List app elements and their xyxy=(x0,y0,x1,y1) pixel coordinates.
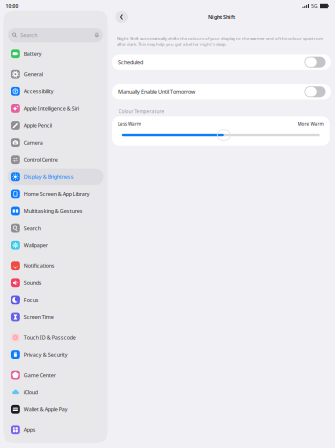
staticText: Wallet & Apple Pay xyxy=(24,406,68,413)
staticText: Colour Temperature xyxy=(118,108,164,115)
button[interactable]: Battery xyxy=(7,46,103,62)
staticText: Search xyxy=(24,224,41,232)
staticText: Screen Time xyxy=(24,313,54,321)
button[interactable]: Camera xyxy=(7,134,103,151)
staticText: More Warm xyxy=(298,121,324,127)
staticText: 10:00 xyxy=(5,3,18,9)
staticText: Accessibility xyxy=(24,88,54,95)
staticText: Camera xyxy=(24,139,43,146)
button[interactable]: Touch ID & Passcode xyxy=(7,329,103,346)
staticText: Game Center xyxy=(24,371,56,379)
button[interactable]: Multitasking & Gestures xyxy=(7,203,103,219)
staticText: Scheduled xyxy=(118,58,143,66)
button[interactable]: Notifications xyxy=(7,258,103,274)
button[interactable]: Accessibility xyxy=(7,83,103,99)
staticText: Wallpaper xyxy=(24,242,48,249)
button[interactable]: Search xyxy=(7,220,103,236)
staticText: Night Shift automatically shifts the col… xyxy=(117,35,323,47)
staticText: Focus xyxy=(24,296,39,304)
button[interactable]: General xyxy=(7,66,103,82)
button[interactable]: Focus xyxy=(7,292,103,308)
staticText: Apple Intelligence & Siri xyxy=(24,105,79,112)
button[interactable]: Screen Time xyxy=(7,309,103,325)
staticText: Battery xyxy=(24,50,42,57)
staticText: General xyxy=(24,71,43,78)
button[interactable]: Back xyxy=(115,11,128,23)
button[interactable]: Home Screen & App Library xyxy=(7,186,103,202)
staticText: Less Warm xyxy=(118,121,141,127)
staticText: 5G xyxy=(311,3,318,9)
staticText: Night Shift xyxy=(208,13,235,21)
button[interactable]: iCloud xyxy=(7,384,103,400)
button[interactable]: Scheduled xyxy=(112,54,331,70)
button[interactable]: Apple Intelligence & Siri xyxy=(7,100,103,116)
staticText: Control Centre xyxy=(24,156,58,163)
staticText: Touch ID & Passcode xyxy=(24,334,76,341)
staticText: Sounds xyxy=(24,279,42,286)
staticText: Search xyxy=(20,31,37,39)
button[interactable]: Game Center xyxy=(7,367,103,383)
staticText: Manually Enable Until Tomorrow xyxy=(118,88,195,95)
button[interactable]: Privacy & Security xyxy=(7,346,103,363)
staticText: iCloud xyxy=(24,389,38,396)
staticText: Apps xyxy=(24,426,36,433)
button[interactable]: Sounds xyxy=(7,275,103,291)
button[interactable]: Display & Brightness xyxy=(7,169,103,185)
button[interactable]: Manually Enable Until Tomorrow xyxy=(112,84,331,99)
staticText: Notifications xyxy=(24,262,55,269)
staticText: Display & Brightness xyxy=(24,173,74,180)
button[interactable]: Wallpaper xyxy=(7,237,103,253)
staticText: Apple Pencil xyxy=(24,122,52,129)
staticText: Multitasking & Gestures xyxy=(24,207,83,215)
button[interactable]: Apps xyxy=(7,422,103,438)
button[interactable]: Control Centre xyxy=(7,152,103,168)
staticText: Home Screen & App Library xyxy=(24,190,90,198)
staticText: Privacy & Security xyxy=(24,351,68,358)
button[interactable]: Wallet & Apple Pay xyxy=(7,401,103,417)
button[interactable]: Apple Pencil xyxy=(7,117,103,134)
